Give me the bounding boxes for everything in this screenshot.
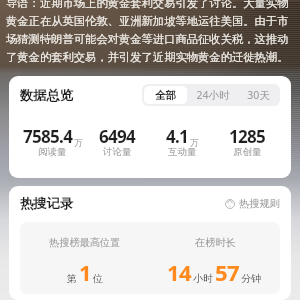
button[interactable]: 24小时 xyxy=(191,86,235,104)
staticText: 小时 xyxy=(193,272,213,285)
staticText: 万 xyxy=(190,137,199,148)
staticText: 6494 xyxy=(99,125,136,148)
staticText: 万 xyxy=(74,137,83,148)
staticText: 导语：近期市场上的黄金套利交易引发了讨论。大量实物 xyxy=(6,0,289,12)
staticText: 了黄金的套利交易，并引发了近期实物黄金的迁徙热潮。 xyxy=(6,48,289,66)
staticText: 1285 xyxy=(229,125,266,148)
staticText: 57 xyxy=(215,257,239,287)
staticText: 原创量 xyxy=(233,146,262,158)
staticText: 阅读量 xyxy=(38,146,67,158)
staticText: 位 xyxy=(93,272,103,285)
staticText: 全部 xyxy=(155,89,176,102)
staticText: 讨论量 xyxy=(103,146,132,158)
button[interactable]: 热搜规则 xyxy=(225,197,280,210)
staticText: 7585.4 xyxy=(23,125,73,148)
staticText: 互动量 xyxy=(168,146,197,158)
staticText: 数据总览 xyxy=(20,87,74,104)
staticText: 热搜榜最高位置 xyxy=(49,236,121,249)
staticText: 4.1 xyxy=(166,125,189,148)
staticText: 热搜规则 xyxy=(239,197,280,210)
staticText: 24小时 xyxy=(196,88,230,102)
staticText: 14 xyxy=(167,257,191,287)
button[interactable]: 全部 xyxy=(144,86,187,104)
button[interactable]: 30天 xyxy=(239,86,278,104)
staticText: 热搜记录 xyxy=(20,195,74,212)
staticText: 黄金正在从英国伦敦、亚洲新加坡等地运往美国。由于市 xyxy=(6,12,289,30)
staticText: 1 xyxy=(79,257,91,287)
staticText: 第 xyxy=(67,272,77,285)
staticText: 30天 xyxy=(247,88,270,102)
staticText: 场猜测特朗普可能会对黄金等进口商品征收关税，这推动 xyxy=(6,30,289,48)
staticText: 分钟 xyxy=(241,272,261,285)
staticText: 在榜时长 xyxy=(195,236,236,249)
